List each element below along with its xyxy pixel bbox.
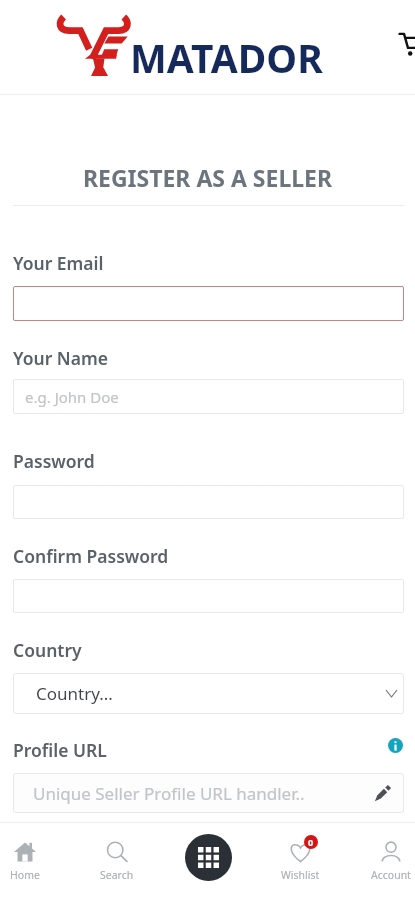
staticText: Profile URL [13,738,107,762]
button[interactable]: Shopping cart [393,24,415,64]
button[interactable]: Edit profile URL [371,782,393,804]
button[interactable]: Search [85,836,149,886]
staticText: REGISTER AS A SELLER [0,162,415,193]
button[interactable]: 0 [268,836,332,886]
staticText: Confirm Password [13,544,169,568]
button[interactable]: Country... [13,673,404,714]
staticText: Account [371,868,411,882]
button[interactable]: Info [385,735,405,755]
staticText: Your Name [13,346,108,370]
button[interactable] [13,485,404,519]
button[interactable]: Account [359,836,415,886]
button[interactable] [13,579,404,613]
staticText: Unique Seller Profile URL handler.. [33,782,305,805]
button[interactable] [13,286,404,321]
button[interactable]: Categories [185,834,232,881]
staticText: e.g. John Doe [25,387,119,407]
button[interactable]: Home [0,836,57,886]
staticText: 0 [308,836,314,848]
staticText: Your Email [13,251,104,275]
staticText: Country... [36,682,113,705]
button[interactable]: e.g. John Doe [13,379,404,414]
button[interactable]: Unique Seller Profile URL handler.. [13,773,404,813]
staticText: Wishlist [281,868,320,882]
staticText: Search [100,868,134,882]
staticText: Password [13,449,95,473]
staticText: Country [13,638,82,662]
staticText: MATADOR [130,31,323,84]
staticText: Home [10,868,40,882]
